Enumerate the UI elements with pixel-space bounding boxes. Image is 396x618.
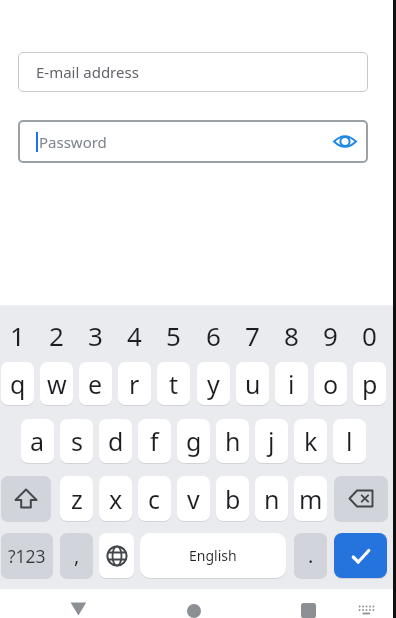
button[interactable]: p [353, 362, 386, 405]
staticText: 1 [10, 318, 25, 350]
button[interactable]: k [294, 419, 327, 463]
staticText: z [71, 482, 83, 516]
button[interactable]: l [333, 419, 366, 463]
button[interactable]: . [294, 533, 327, 578]
button[interactable]: n [255, 476, 288, 521]
button[interactable] [334, 120, 358, 163]
staticText: 4 [127, 318, 142, 350]
staticText: l [346, 424, 353, 458]
button[interactable]: 4 [118, 318, 151, 350]
staticText: a [30, 424, 45, 458]
staticText: u [245, 367, 261, 401]
button[interactable] [1, 476, 51, 521]
button[interactable]: q [1, 362, 34, 405]
staticText: o [323, 367, 339, 401]
staticText: c [148, 482, 161, 516]
staticText: k [304, 424, 318, 458]
button[interactable]: e [79, 362, 112, 405]
staticText: , [74, 542, 80, 569]
button[interactable]: u [236, 362, 269, 405]
button[interactable]: ?123 [1, 533, 53, 578]
staticText: 2 [49, 318, 64, 350]
button[interactable]: English [140, 533, 286, 578]
staticText: g [186, 424, 202, 458]
staticText: n [264, 482, 280, 516]
staticText: 9 [323, 318, 338, 350]
button[interactable]: 8 [275, 318, 308, 350]
button[interactable]: r [118, 362, 151, 405]
button[interactable]: t [157, 362, 190, 405]
button[interactable]: i [275, 362, 308, 405]
staticText: h [225, 424, 241, 458]
button[interactable]: v [177, 476, 210, 521]
button[interactable]: Password [18, 120, 368, 163]
button[interactable]: 9 [314, 318, 347, 350]
staticText: m [299, 482, 323, 516]
button[interactable]: x [99, 476, 132, 521]
staticText: w [47, 367, 67, 401]
button[interactable] [301, 603, 316, 618]
staticText: p [362, 367, 378, 401]
button[interactable] [358, 604, 375, 618]
button[interactable]: 7 [236, 318, 269, 350]
staticText: ?123 [8, 544, 46, 568]
button[interactable] [187, 604, 201, 618]
button[interactable]: 3 [79, 318, 112, 350]
staticText: t [169, 367, 179, 401]
button[interactable]: , [60, 533, 93, 578]
button[interactable] [334, 476, 388, 521]
staticText: j [268, 424, 275, 458]
button[interactable]: s [60, 419, 93, 463]
staticText: 0 [362, 318, 377, 350]
button[interactable]: m [294, 476, 327, 521]
button[interactable]: 6 [197, 318, 230, 350]
button[interactable] [99, 533, 134, 578]
button[interactable]: 1 [1, 318, 34, 350]
button[interactable]: d [99, 419, 132, 463]
button[interactable]: f [138, 419, 171, 463]
staticText: e [88, 367, 103, 401]
staticText: y [207, 367, 220, 401]
button[interactable]: g [177, 419, 210, 463]
button[interactable]: 5 [157, 318, 190, 350]
button[interactable]: 2 [40, 318, 73, 350]
staticText: English [189, 546, 237, 565]
staticText: . [308, 542, 314, 569]
staticText: d [108, 424, 124, 458]
button[interactable]: j [255, 419, 288, 463]
button[interactable]: b [216, 476, 249, 521]
button[interactable]: 0 [353, 318, 386, 350]
button[interactable] [70, 602, 87, 616]
staticText: 8 [284, 318, 299, 350]
staticText: s [71, 424, 83, 458]
staticText: q [10, 367, 26, 401]
staticText: 3 [88, 318, 103, 350]
staticText: 5 [166, 318, 181, 350]
button[interactable] [334, 533, 387, 578]
staticText: b [225, 482, 241, 516]
staticText: x [109, 482, 123, 516]
button[interactable]: w [40, 362, 73, 405]
staticText: 7 [245, 318, 260, 350]
staticText: i [288, 367, 295, 401]
staticText: r [129, 367, 140, 401]
button[interactable]: y [197, 362, 230, 405]
button[interactable]: c [138, 476, 171, 521]
staticText: v [187, 482, 200, 516]
button[interactable]: a [21, 419, 54, 463]
button[interactable]: E-mail address [18, 52, 368, 92]
staticText: f [150, 424, 159, 458]
staticText: E-mail address [36, 62, 139, 82]
staticText: 6 [206, 318, 221, 350]
button[interactable]: z [60, 476, 93, 521]
button[interactable]: o [314, 362, 347, 405]
button[interactable]: h [216, 419, 249, 463]
staticText: Password [39, 132, 107, 152]
